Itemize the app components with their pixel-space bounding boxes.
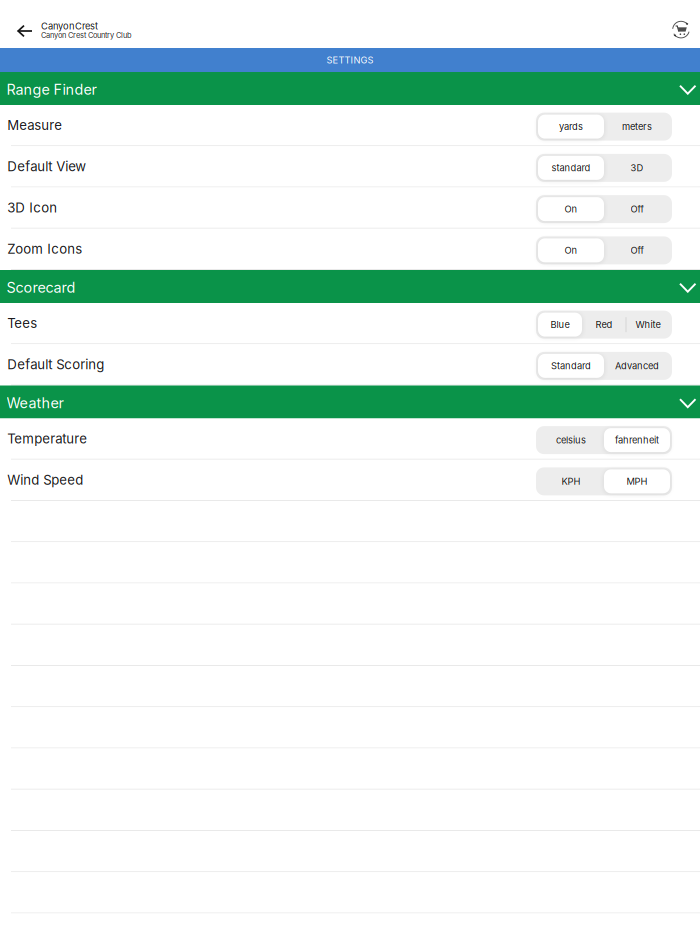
staticText: Tees [7,315,37,331]
staticText: Range Finder [6,81,96,98]
staticText: CanyonCrest [41,20,98,32]
staticText: Weather [6,394,63,412]
staticText: Off [630,245,643,256]
staticText: celsius [556,434,586,446]
staticText: White [635,319,660,330]
staticText: On [564,203,577,215]
button[interactable]: Wind Speed [0,460,700,501]
button[interactable]: Restore purchases [666,14,696,44]
staticText: Advanced [615,360,659,371]
staticText: Scorecard [6,279,75,296]
button[interactable]: Default Scoring [0,344,700,385]
staticText: Canyon Crest Country Club [41,31,132,40]
button[interactable]: Back [8,15,40,47]
button[interactable]: 3D Icon [0,187,700,229]
staticText: On [564,245,577,256]
staticText: Temperature [7,431,87,447]
staticText: yards [559,121,583,132]
staticText: 3D Icon [7,200,57,216]
button[interactable]: Weather [0,385,700,418]
staticText: Measure [7,117,62,133]
staticText: Blue [550,319,569,330]
staticText: Red [595,319,612,330]
staticText: standard [551,162,590,173]
staticText: KPH [561,476,580,487]
staticText: Standard [551,360,591,371]
staticText: fahrenheit [615,434,659,446]
staticText: Default Scoring [7,356,104,372]
staticText: Wind Speed [7,472,83,488]
staticText: Off [630,203,643,215]
staticText: MPH [626,476,647,487]
button[interactable]: Default View [0,146,700,187]
staticText: SETTINGS [326,54,373,66]
button[interactable]: Zoom Icons [0,229,700,270]
button[interactable]: Range Finder [0,72,700,105]
staticText: Default View [7,158,86,174]
button[interactable]: Tees [0,303,700,344]
button[interactable]: Temperature [0,418,700,460]
staticText: 3D [630,162,643,173]
button[interactable]: Scorecard [0,270,700,303]
staticText: Zoom Icons [7,241,82,257]
button[interactable]: Measure [0,105,700,146]
staticText: meters [622,121,652,132]
